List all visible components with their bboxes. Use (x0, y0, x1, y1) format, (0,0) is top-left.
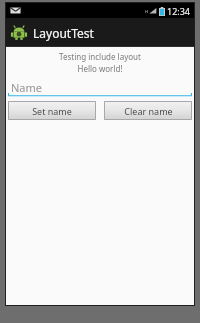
button[interactable]: Name (8, 80, 192, 97)
button[interactable]: Set name (8, 101, 96, 120)
staticText: Name (11, 80, 43, 95)
staticText: H (145, 9, 148, 14)
staticText: 12:34 (167, 5, 191, 17)
staticText: Clear name (124, 105, 173, 117)
other: App icon (11, 25, 27, 41)
staticText: Testing include layout (6, 51, 194, 62)
staticText: Hello world! (6, 63, 194, 74)
staticText: Set name (32, 105, 72, 117)
button[interactable]: Clear name (104, 101, 192, 120)
staticText: LayoutTest (33, 25, 94, 41)
